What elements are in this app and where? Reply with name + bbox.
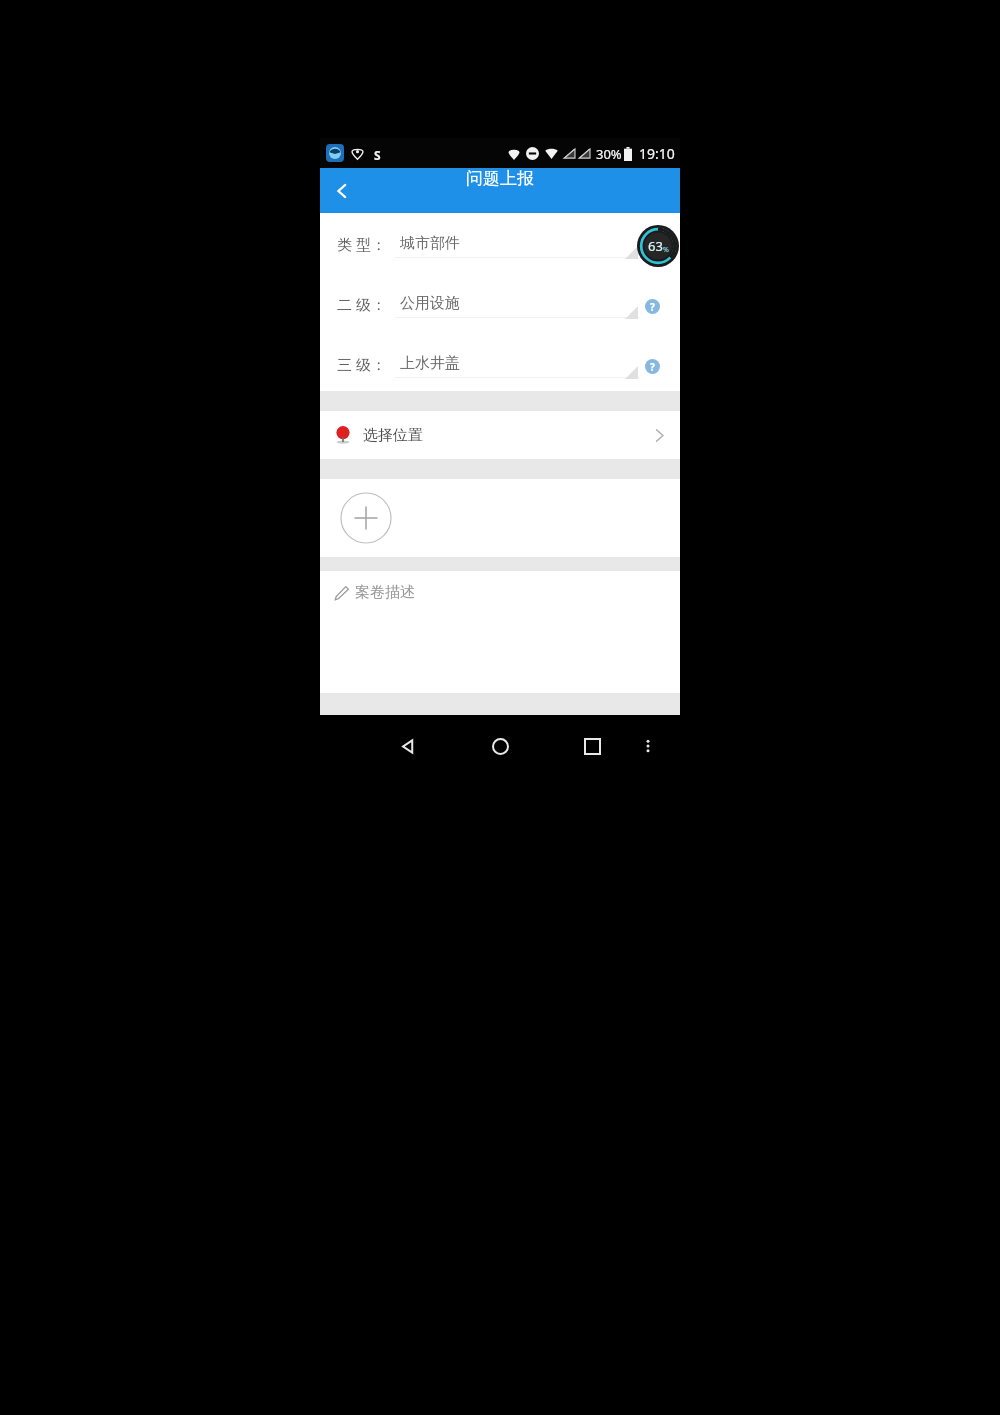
button[interactable]: 选择位置 xyxy=(320,411,680,459)
button[interactable]: 类 型： xyxy=(320,227,680,273)
staticText: 案卷描述 xyxy=(355,583,415,602)
staticText: ? xyxy=(650,300,655,314)
button[interactable]: Home xyxy=(480,726,520,766)
button[interactable]: Help xyxy=(645,299,660,314)
staticText: 类 型： xyxy=(337,234,386,254)
staticText: S xyxy=(374,147,381,160)
staticText: 公用设施 xyxy=(400,294,460,313)
button[interactable]: Back xyxy=(388,726,428,766)
button[interactable]: 三 级： xyxy=(320,347,680,393)
button[interactable]: More options xyxy=(630,728,666,764)
staticText: ? xyxy=(650,360,655,374)
button[interactable]: Recent apps xyxy=(572,726,612,766)
staticText: % xyxy=(663,245,669,255)
staticText: 30% xyxy=(596,145,622,163)
staticText: 三 级： xyxy=(337,354,386,374)
button[interactable]: 二 级： xyxy=(320,287,680,333)
button[interactable]: Add photo xyxy=(340,492,392,544)
button[interactable]: 案卷描述 xyxy=(320,571,680,693)
staticText: 上水井盖 xyxy=(400,354,460,373)
button[interactable]: Back xyxy=(320,169,364,213)
staticText: 问题上报 xyxy=(466,168,534,189)
staticText: 63 xyxy=(648,237,663,255)
staticText: 选择位置 xyxy=(363,426,423,445)
staticText: 城市部件 xyxy=(400,234,460,253)
button[interactable]: Help xyxy=(645,359,660,374)
staticText: 19:10 xyxy=(639,144,675,163)
staticText: 二 级： xyxy=(337,294,386,314)
